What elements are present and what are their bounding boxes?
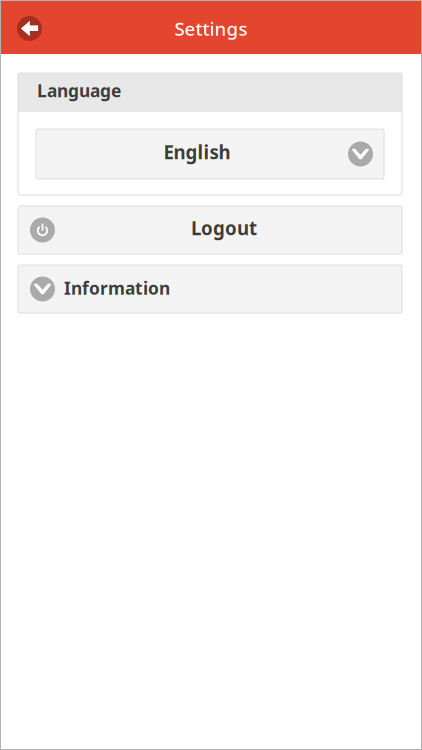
button[interactable]: Information: [18, 265, 402, 313]
staticText: Information: [64, 276, 170, 299]
button[interactable]: Back: [0, 3, 54, 54]
staticText: Logout: [191, 216, 257, 240]
button[interactable]: English: [36, 129, 384, 179]
staticText: Settings: [174, 16, 247, 41]
button[interactable]: Logout: [18, 206, 402, 254]
staticText: English: [163, 140, 230, 164]
staticText: Language: [37, 79, 121, 102]
